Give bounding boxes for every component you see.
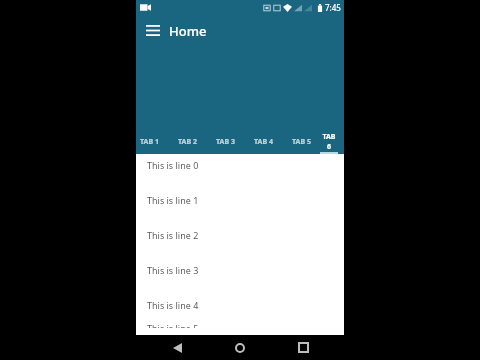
staticText: TAB 2 — [178, 137, 197, 147]
staticText: 7:45 — [325, 2, 341, 13]
button[interactable]: This is line 5 — [136, 322, 344, 328]
staticText: TAB 6 — [320, 132, 338, 152]
button[interactable]: This is line 4 — [136, 287, 344, 322]
button[interactable]: TAB 6 — [320, 130, 338, 154]
button[interactable]: Recent apps — [281, 335, 325, 360]
staticText: This is line 0 — [147, 159, 199, 171]
button[interactable]: Home — [218, 335, 262, 360]
button[interactable]: This is line 0 — [136, 154, 344, 182]
button[interactable]: TAB 4 — [244, 130, 282, 154]
staticText: TAB 4 — [254, 137, 273, 147]
button[interactable]: TAB 3 — [206, 130, 244, 154]
staticText: This is line 5 — [147, 322, 199, 328]
staticText: Home — [169, 22, 207, 40]
button[interactable]: TAB 5 — [282, 130, 320, 154]
staticText: TAB 5 — [292, 137, 311, 147]
button[interactable]: Back — [155, 335, 199, 360]
button[interactable]: TAB 1 — [136, 130, 168, 154]
button[interactable]: This is line 2 — [136, 217, 344, 252]
button[interactable]: Open navigation drawer — [136, 14, 169, 47]
staticText: TAB 1 — [140, 137, 159, 147]
button[interactable]: This is line 3 — [136, 252, 344, 287]
staticText: This is line 4 — [147, 299, 199, 311]
staticText: This is line 3 — [147, 264, 199, 276]
button[interactable]: TAB 2 — [168, 130, 206, 154]
staticText: This is line 2 — [147, 229, 199, 241]
staticText: TAB 3 — [216, 137, 235, 147]
staticText: This is line 1 — [147, 194, 199, 206]
button[interactable]: This is line 1 — [136, 182, 344, 217]
